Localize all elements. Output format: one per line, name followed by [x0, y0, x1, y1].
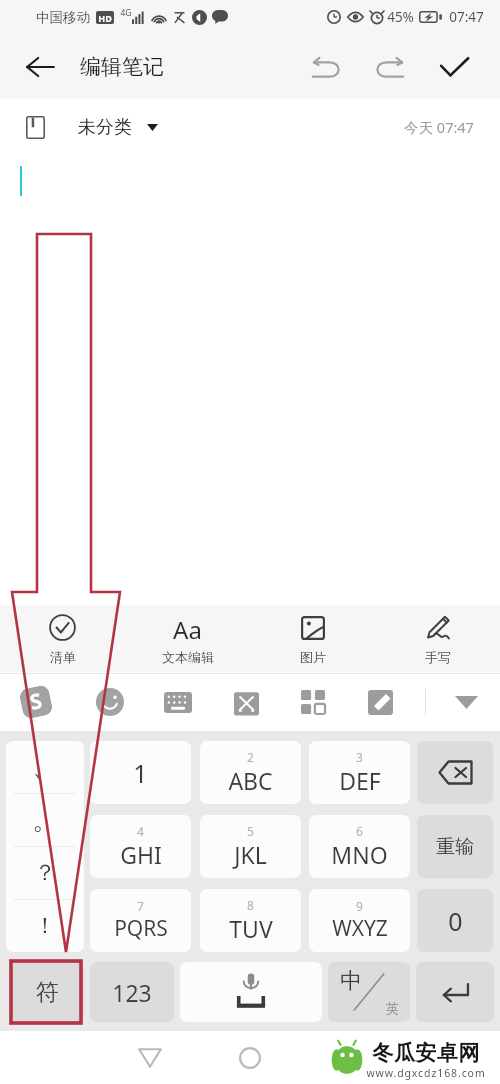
button[interactable]: Home [220, 1031, 280, 1084]
button[interactable]: Hide keyboard [444, 680, 488, 724]
button[interactable]: Emoji [88, 680, 132, 724]
staticText: 英 [386, 1000, 399, 1016]
button[interactable]: Space or voice input [180, 962, 322, 1022]
button[interactable]: ？ [6, 847, 84, 899]
staticText: 07:47 [449, 8, 484, 26]
button[interactable]: 手写 [375, 605, 500, 672]
staticText: 45% [387, 8, 414, 26]
staticText: GHI [120, 839, 162, 870]
staticText: 3 [356, 749, 363, 765]
staticText: MNO [331, 839, 388, 870]
staticText: 中 [340, 967, 362, 995]
staticText: 未分类 [78, 116, 132, 139]
button[interactable]: Undo [304, 45, 348, 89]
button[interactable]: Enter [416, 962, 494, 1022]
button[interactable]: 图片 [250, 605, 375, 672]
staticText: 2 [247, 749, 254, 765]
staticText: 、 [32, 751, 58, 784]
button[interactable]: Back [18, 45, 62, 89]
button[interactable]: 3 [309, 741, 410, 804]
staticText: 8 [247, 897, 254, 913]
button[interactable]: 9 [309, 889, 410, 952]
button[interactable]: Redo [368, 45, 412, 89]
button[interactable]: 符 [10, 962, 84, 1022]
staticText: 符 [36, 978, 59, 1007]
button[interactable]: 4 [90, 815, 191, 878]
button[interactable]: Keyboard layout [156, 680, 200, 724]
staticText: 中国移动 [36, 9, 90, 26]
button[interactable]: Aa [125, 605, 250, 672]
staticText: WXYZ [332, 914, 388, 943]
staticText: 0 [448, 904, 463, 938]
staticText: 7 [137, 898, 144, 914]
button[interactable]: 重输 [417, 815, 493, 878]
staticText: 4G [120, 7, 132, 19]
button[interactable]: Delete [417, 741, 493, 804]
staticText: 手写 [425, 649, 451, 665]
staticText: S [27, 686, 45, 717]
staticText: TUV [229, 913, 273, 944]
button[interactable]: 6 [309, 815, 410, 878]
button[interactable]: Back [120, 1031, 180, 1084]
staticText: 5 [247, 823, 254, 839]
button[interactable]: 123 [90, 962, 174, 1022]
staticText: 6 [356, 823, 363, 839]
staticText: 图片 [300, 649, 326, 665]
button[interactable]: 2 [200, 741, 301, 804]
staticText: 123 [112, 977, 152, 1008]
button[interactable]: 7 [90, 889, 191, 952]
button[interactable]: 未分类 [26, 109, 158, 146]
staticText: 今天 07:47 [404, 117, 474, 137]
staticText: 4 [137, 823, 144, 839]
staticText: 。 [32, 804, 58, 837]
staticText: www.dgxcdz168.com [366, 1066, 486, 1080]
staticText: 文本编辑 [162, 649, 214, 665]
staticText: DEF [339, 765, 381, 796]
button[interactable]: 、 [6, 741, 84, 793]
button[interactable]: 5 [200, 815, 301, 878]
button[interactable]: 8 [200, 889, 301, 952]
staticText: Aa [173, 613, 202, 642]
button[interactable]: Chinese English toggle [328, 962, 410, 1022]
staticText: ABC [228, 765, 273, 796]
staticText: 清单 [50, 649, 76, 665]
staticText: PQRS [114, 914, 168, 943]
button[interactable]: Clipboard [224, 680, 268, 724]
staticText: JKL [234, 839, 267, 870]
button[interactable]: 0 [417, 889, 493, 952]
button[interactable]: Done [432, 45, 476, 89]
staticText: HD [98, 12, 112, 24]
button[interactable]: 清单 [0, 605, 125, 672]
button[interactable]: 。 [6, 794, 84, 846]
button[interactable]: Sogou input [14, 680, 58, 724]
button[interactable]: ！ [6, 900, 84, 952]
staticText: ？ [34, 859, 56, 887]
button[interactable]: Theme [358, 680, 402, 724]
staticText: 冬瓜安卓网 [372, 1040, 480, 1066]
button[interactable]: 1 [90, 741, 191, 804]
staticText: ！ [34, 912, 56, 940]
staticText: 9 [356, 898, 363, 914]
staticText: 重输 [436, 835, 474, 859]
staticText: 编辑笔记 [80, 54, 164, 80]
staticText: 1 [133, 756, 148, 790]
button[interactable]: More apps [291, 680, 335, 724]
